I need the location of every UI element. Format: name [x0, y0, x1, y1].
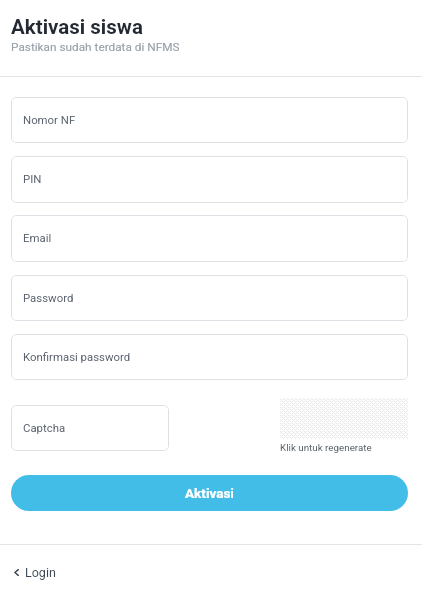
button[interactable]: Konfirmasi password: [11, 334, 408, 380]
button[interactable]: Klik untuk regenerate: [280, 442, 372, 453]
staticText: PIN: [23, 172, 42, 185]
staticText: Captcha: [23, 421, 66, 434]
staticText: Konfirmasi password: [23, 350, 131, 363]
staticText: Nomor NF: [23, 113, 76, 126]
staticText: Password: [23, 291, 74, 304]
button[interactable]: Captcha: [11, 405, 169, 451]
button[interactable]: Regenerate captcha image: [280, 398, 408, 439]
staticText: Email: [23, 231, 52, 244]
staticText: Login: [25, 565, 56, 580]
staticText: Aktivasi siswa: [11, 15, 143, 39]
button[interactable]: Aktivasi: [11, 475, 408, 511]
button[interactable]: Login: [8, 560, 56, 584]
button[interactable]: Password: [11, 275, 408, 321]
staticText: Aktivasi: [185, 485, 234, 501]
button[interactable]: Nomor NF: [11, 97, 408, 143]
button[interactable]: Email: [11, 215, 408, 262]
button[interactable]: PIN: [11, 156, 408, 203]
staticText: Pastikan sudah terdata di NFMS: [11, 40, 180, 54]
